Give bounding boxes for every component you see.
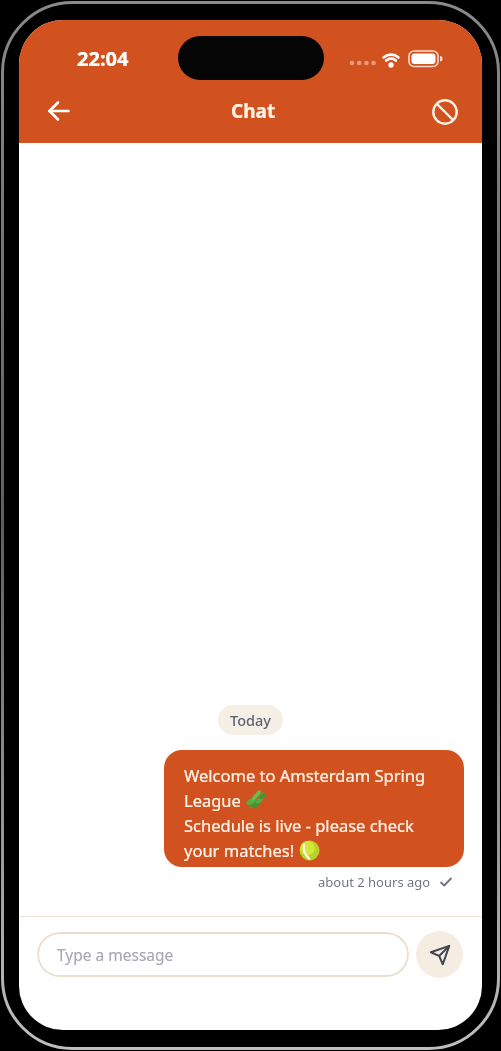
staticText: your matches! xyxy=(184,839,299,861)
staticText: about 2 hours ago xyxy=(318,873,431,891)
button[interactable] xyxy=(423,90,467,134)
button[interactable] xyxy=(416,931,463,978)
button[interactable] xyxy=(37,89,81,133)
staticText: Welcome to Amsterdam Spring xyxy=(184,764,426,786)
staticText: Chat xyxy=(231,98,276,124)
button[interactable]: Type a message xyxy=(37,932,409,977)
staticText: 22:04 xyxy=(77,45,129,72)
staticText: Today xyxy=(230,710,271,730)
staticText: Schedule is live - please check xyxy=(184,814,414,836)
staticText: Type a message xyxy=(57,944,174,965)
staticText: League xyxy=(184,789,246,811)
